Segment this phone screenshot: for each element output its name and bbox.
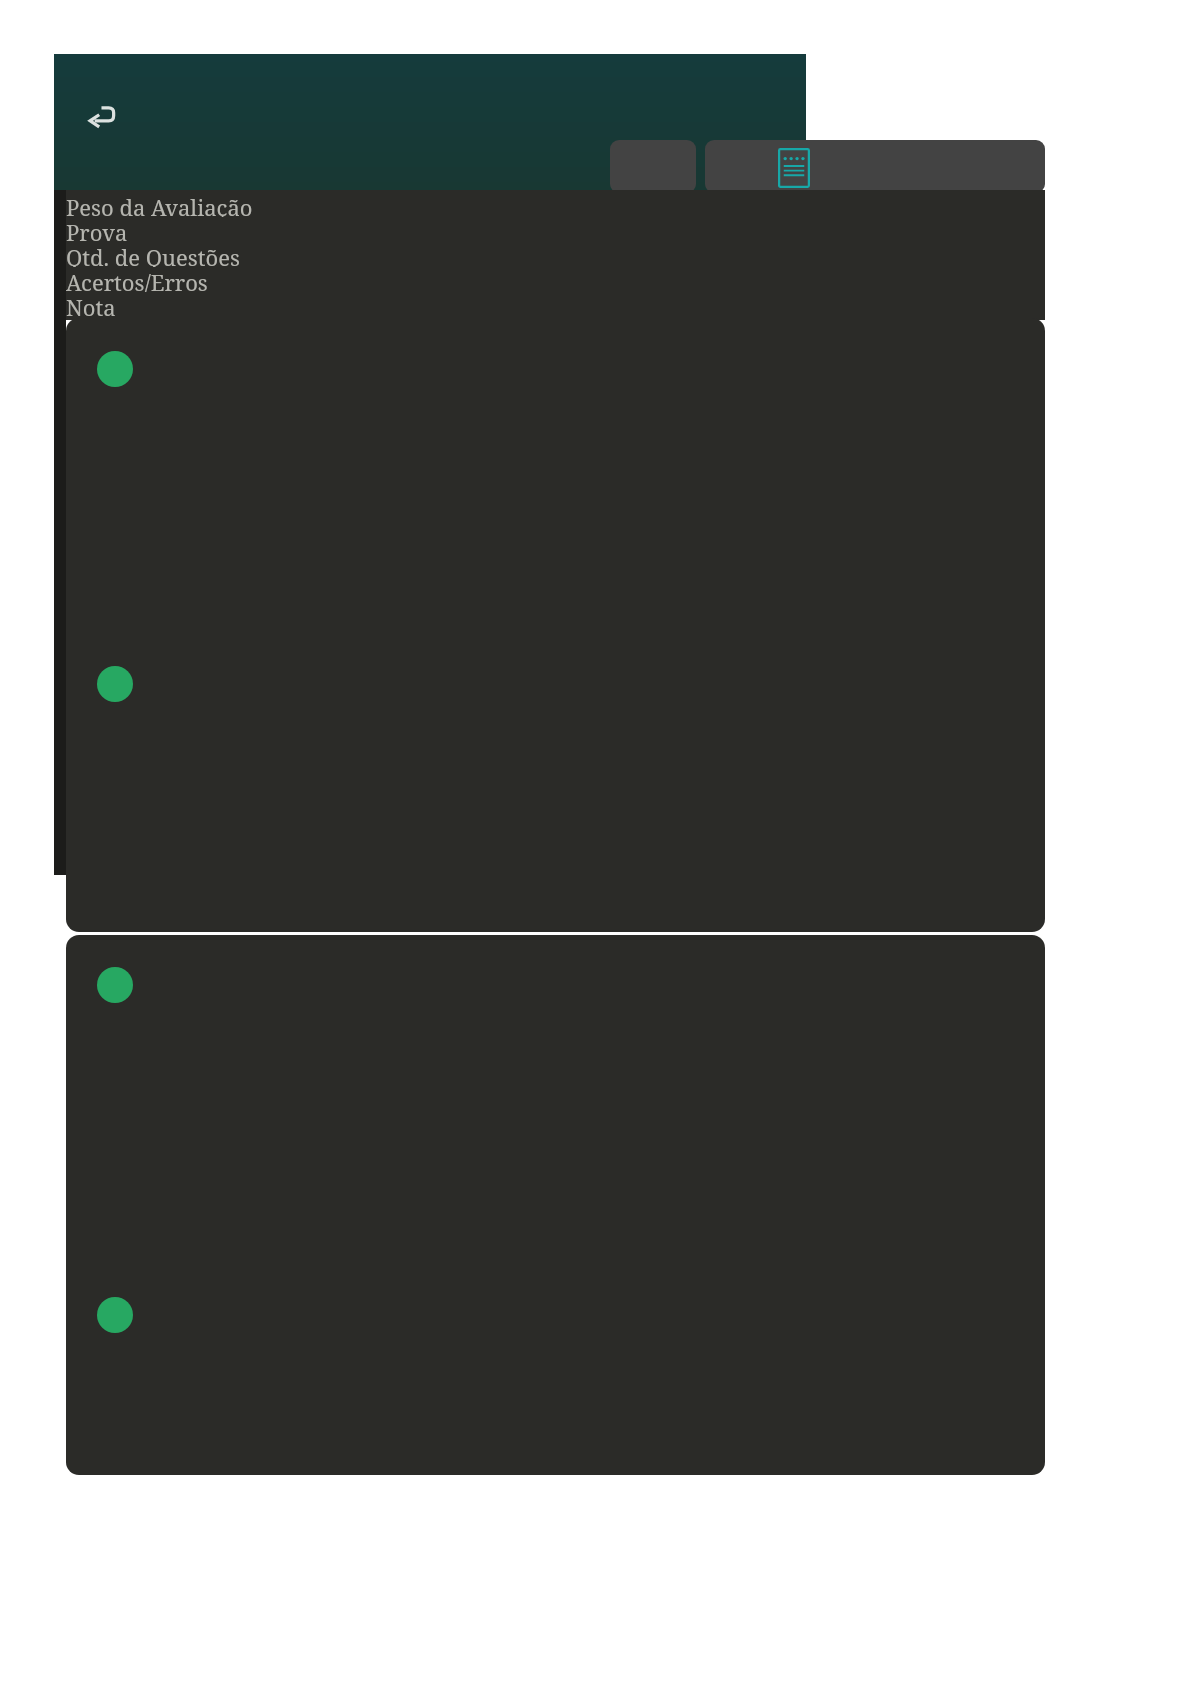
button[interactable] xyxy=(66,935,1045,1475)
staticText: Nota xyxy=(66,292,116,317)
staticText: Prova xyxy=(66,217,128,242)
staticText: Qtd. de Questões xyxy=(66,242,240,267)
button[interactable]: Prova xyxy=(705,140,1045,193)
button[interactable] xyxy=(66,318,1045,932)
staticText: Acertos/Erros xyxy=(66,267,208,292)
button[interactable] xyxy=(610,140,696,193)
staticText: Peso da Avaliação xyxy=(66,192,253,217)
button[interactable]: Voltar xyxy=(84,98,122,136)
